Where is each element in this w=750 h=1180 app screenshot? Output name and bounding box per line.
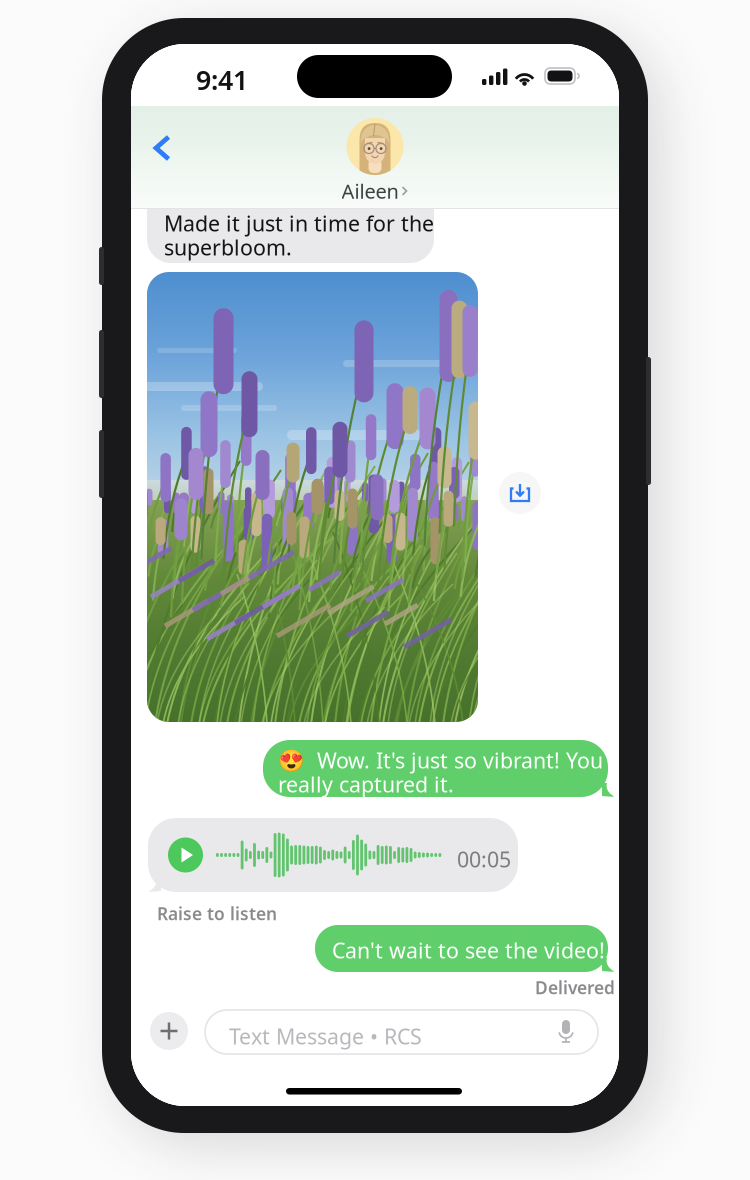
staticText: superbloom. <box>164 233 292 261</box>
staticText: Aileen <box>341 178 398 204</box>
button[interactable]: Aileen <box>310 116 440 208</box>
staticText: Delivered <box>535 976 615 999</box>
staticText: 😍 Wow. It's just so vibrant! You <box>278 746 603 774</box>
button[interactable]: Add attachment <box>150 1012 188 1050</box>
button[interactable]: Back <box>136 122 188 174</box>
staticText: 00:05 <box>457 845 511 873</box>
staticText: 9:41 <box>196 62 248 97</box>
staticText: really captured it. <box>278 770 454 798</box>
button[interactable]: Text Message • RCS <box>205 1010 598 1054</box>
staticText: Raise to listen <box>157 902 277 925</box>
staticText: Can't wait to see the video! <box>332 936 605 964</box>
staticText: Made it just in time for the <box>164 209 434 237</box>
staticText: Text Message • RCS <box>229 1022 422 1050</box>
button[interactable]: Save photo <box>499 472 541 514</box>
